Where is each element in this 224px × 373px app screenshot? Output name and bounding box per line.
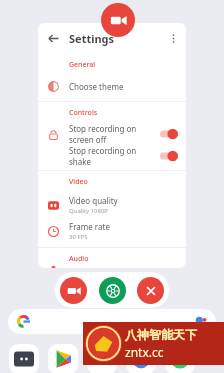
button[interactable]: Stop recording on shake [38, 145, 186, 167]
staticText: Frame rate [69, 221, 110, 232]
button[interactable]: Choose theme [38, 75, 186, 97]
button[interactable]: Play Store [48, 344, 78, 373]
staticText: Stop recording on screen off [69, 123, 160, 145]
button[interactable]: WhatsApp [165, 344, 195, 373]
staticText: General [69, 60, 96, 70]
button[interactable]: Video quality [38, 192, 186, 218]
button[interactable]: More options [163, 28, 183, 48]
staticText: Settings [69, 31, 115, 46]
button[interactable] [160, 150, 178, 162]
staticText: Stop recording on shake [69, 145, 160, 167]
staticText: 八神智能天下 [125, 327, 197, 342]
button[interactable]: Settings [99, 277, 126, 304]
button[interactable]: Files [9, 344, 39, 373]
staticText: Choose theme [69, 81, 124, 92]
button[interactable]: Duo [126, 344, 156, 373]
button[interactable]: Back [43, 28, 64, 49]
staticText: 30 FPS [69, 233, 88, 241]
staticText: Controls [69, 108, 98, 118]
button[interactable]: Stop recording on screen off [38, 123, 186, 145]
staticText: Audio [69, 254, 89, 264]
staticText: Video quality [69, 195, 118, 206]
button[interactable]: YouTube [87, 344, 117, 373]
staticText: Quality 1080P [69, 207, 109, 215]
button[interactable]: Recording [101, 3, 135, 37]
staticText: zntx.cc [125, 344, 164, 360]
button[interactable]: Close [137, 277, 164, 304]
button[interactable] [160, 128, 178, 140]
button[interactable]: Record [60, 277, 87, 304]
staticText: Video [69, 177, 88, 187]
button[interactable]: Frame rate [38, 218, 186, 244]
button[interactable]: Google search [8, 309, 216, 334]
